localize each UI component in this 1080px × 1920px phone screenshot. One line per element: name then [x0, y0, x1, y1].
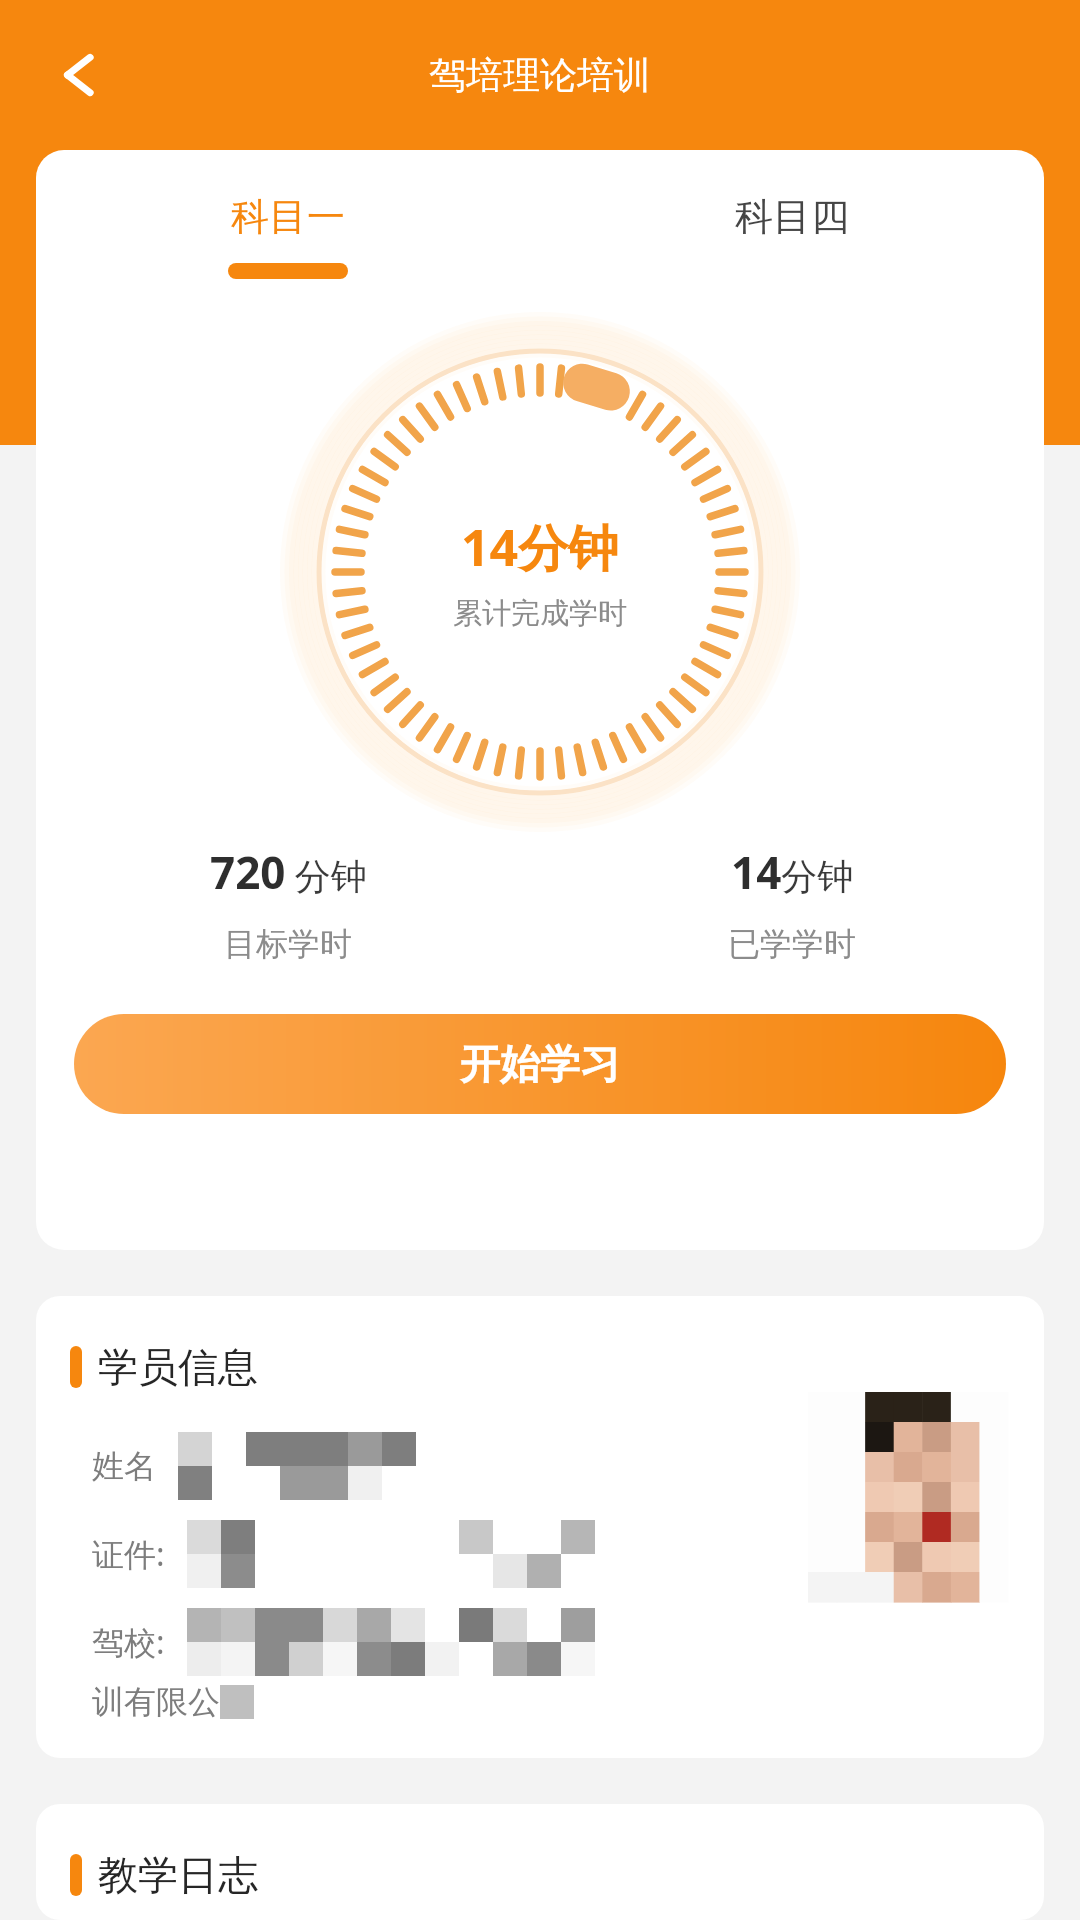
button[interactable]: 科目四: [540, 150, 1044, 322]
button[interactable]: Back: [28, 33, 112, 117]
staticText: 驾校:: [92, 1620, 165, 1664]
staticText: 姓名: [92, 1446, 156, 1486]
staticText: 证件:: [92, 1532, 165, 1576]
staticText: 驾培理论培训: [429, 52, 651, 99]
staticText: 训有限公: [92, 1682, 220, 1722]
staticText: 14分钟: [461, 513, 619, 581]
staticText: 14分钟: [731, 842, 854, 902]
button[interactable]: 开始学习: [74, 1014, 1006, 1114]
staticText: 累计完成学时: [453, 595, 627, 632]
button[interactable]: 科目一: [36, 150, 540, 322]
staticText: 科目四: [735, 193, 849, 241]
staticText: 科目一: [231, 193, 345, 241]
staticText: 教学日志: [98, 1850, 258, 1900]
staticText: 720 分钟: [210, 842, 367, 902]
staticText: 已学学时: [728, 924, 856, 964]
staticText: 目标学时: [224, 924, 352, 964]
staticText: 开始学习: [460, 1039, 620, 1089]
staticText: 学员信息: [98, 1342, 258, 1392]
